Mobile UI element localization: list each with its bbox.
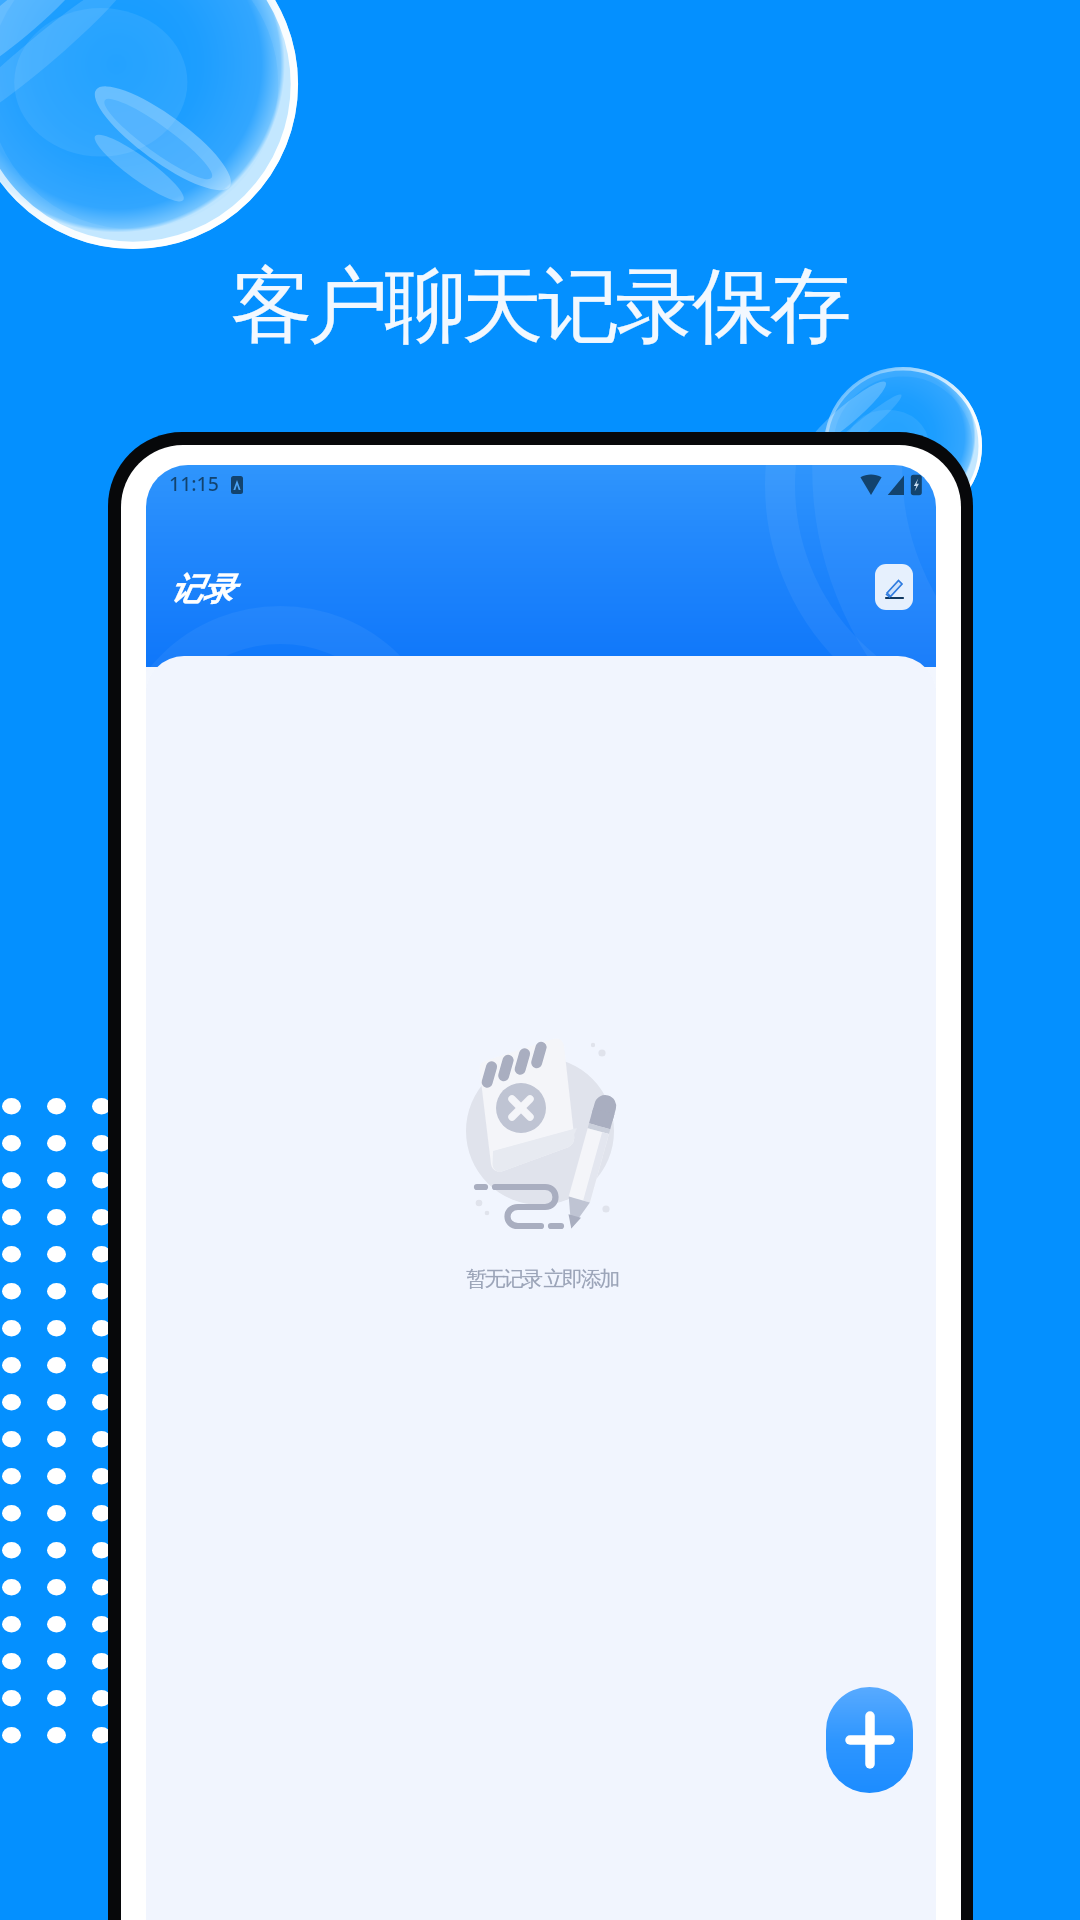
staticText: 记录 — [170, 569, 234, 609]
staticText: 暂无记录 立即添加 — [466, 1264, 618, 1293]
staticText: 11:15 — [169, 470, 219, 497]
button[interactable]: Edit — [875, 564, 913, 610]
button[interactable]: 暂无记录 立即添加 — [446, 1025, 646, 1295]
button[interactable]: Add record — [826, 1687, 913, 1793]
staticText: 客户聊天记录保存 — [233, 255, 849, 358]
